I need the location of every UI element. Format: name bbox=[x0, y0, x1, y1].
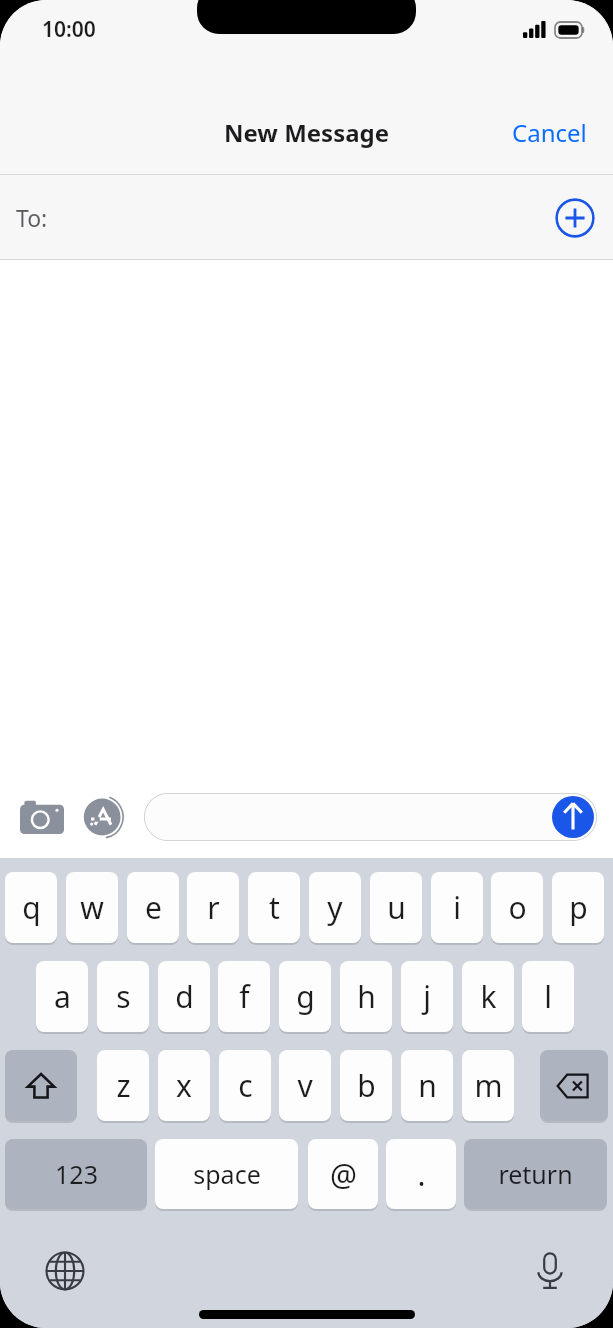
button[interactable]: 123 bbox=[5, 1139, 147, 1209]
staticText: 123 bbox=[55, 1157, 98, 1191]
staticText: m bbox=[474, 1065, 503, 1106]
button[interactable]: n bbox=[401, 1050, 453, 1121]
button[interactable]: v bbox=[279, 1050, 331, 1121]
button[interactable]: Backspace bbox=[540, 1050, 608, 1121]
staticText: q bbox=[22, 887, 41, 928]
button[interactable]: q bbox=[5, 872, 57, 943]
staticText: return bbox=[498, 1157, 573, 1191]
staticText: space bbox=[193, 1157, 261, 1191]
button[interactable]: y bbox=[309, 872, 361, 943]
staticText: g bbox=[296, 976, 315, 1017]
staticText: o bbox=[508, 887, 527, 928]
staticText: To: bbox=[16, 202, 48, 233]
button[interactable]: g bbox=[279, 961, 331, 1032]
staticText: y bbox=[327, 887, 343, 928]
staticText: k bbox=[480, 976, 497, 1017]
staticText: r bbox=[207, 887, 220, 928]
button[interactable]: k bbox=[462, 961, 514, 1032]
staticText: Cancel bbox=[512, 116, 587, 149]
button[interactable]: Dictation bbox=[525, 1246, 575, 1296]
button[interactable]: b bbox=[340, 1050, 392, 1121]
staticText: c bbox=[238, 1065, 253, 1106]
button[interactable]: m bbox=[462, 1050, 514, 1121]
staticText: New Message bbox=[224, 116, 390, 149]
button[interactable]: @ bbox=[308, 1139, 378, 1209]
button[interactable]: i bbox=[431, 872, 483, 943]
staticText: w bbox=[80, 887, 104, 928]
staticText: h bbox=[357, 976, 376, 1017]
button[interactable]: Send bbox=[552, 796, 594, 838]
button[interactable]: Add contact bbox=[555, 198, 595, 238]
button[interactable]: return bbox=[464, 1139, 607, 1209]
button[interactable]: h bbox=[340, 961, 392, 1032]
button[interactable]: a bbox=[36, 961, 88, 1032]
button[interactable]: j bbox=[401, 961, 453, 1032]
button[interactable]: Shift bbox=[5, 1050, 77, 1121]
button[interactable]: o bbox=[491, 872, 543, 943]
staticText: i bbox=[453, 887, 461, 928]
button[interactable]: . bbox=[386, 1139, 456, 1209]
staticText: s bbox=[116, 976, 131, 1017]
staticText: a bbox=[54, 976, 71, 1017]
staticText: @ bbox=[330, 1154, 357, 1195]
staticText: b bbox=[357, 1065, 376, 1106]
staticText: e bbox=[145, 887, 162, 928]
button[interactable]: l bbox=[522, 961, 574, 1032]
staticText: d bbox=[175, 976, 194, 1017]
staticText: n bbox=[418, 1065, 437, 1106]
button[interactable]: f bbox=[218, 961, 270, 1032]
button[interactable]: c bbox=[219, 1050, 271, 1121]
staticText: p bbox=[569, 887, 588, 928]
staticText: v bbox=[297, 1065, 313, 1106]
button[interactable]: space bbox=[155, 1139, 298, 1209]
button[interactable]: t bbox=[248, 872, 300, 943]
button[interactable]: p bbox=[552, 872, 604, 943]
staticText: u bbox=[387, 887, 406, 928]
staticText: t bbox=[269, 887, 280, 928]
button[interactable]: u bbox=[370, 872, 422, 943]
button[interactable]: Change keyboard bbox=[40, 1246, 90, 1296]
button[interactable]: x bbox=[158, 1050, 210, 1121]
staticText: j bbox=[423, 976, 431, 1017]
staticText: . bbox=[417, 1154, 426, 1195]
button[interactable]: To: bbox=[0, 175, 613, 260]
staticText: 10:00 bbox=[42, 15, 96, 44]
button[interactable]: d bbox=[158, 961, 210, 1032]
button[interactable]: e bbox=[127, 872, 179, 943]
button[interactable]: Camera bbox=[18, 793, 66, 841]
button[interactable]: Send bbox=[144, 793, 597, 841]
button[interactable]: App Store bbox=[80, 793, 128, 841]
staticText: x bbox=[176, 1065, 192, 1106]
staticText: z bbox=[116, 1065, 131, 1106]
button[interactable]: r bbox=[187, 872, 239, 943]
staticText: f bbox=[239, 976, 250, 1017]
button[interactable]: Cancel bbox=[486, 108, 613, 157]
staticText: l bbox=[544, 976, 552, 1017]
button[interactable]: z bbox=[97, 1050, 149, 1121]
button[interactable]: s bbox=[97, 961, 149, 1032]
button[interactable]: w bbox=[66, 872, 118, 943]
